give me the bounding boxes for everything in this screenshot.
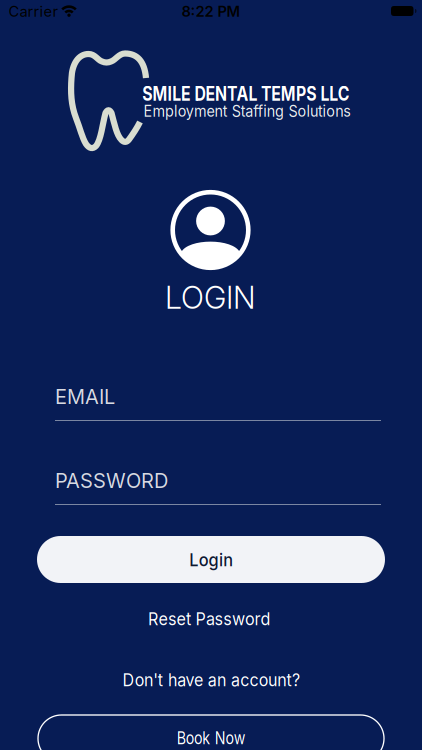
staticText: Carrier [8, 3, 58, 20]
button[interactable]: PASSWORD [55, 469, 381, 505]
staticText: Book Now [169, 728, 252, 748]
staticText: PASSWORD [55, 469, 168, 493]
staticText: 8:22 PM [181, 3, 240, 20]
button[interactable]: Book Now [38, 715, 384, 750]
button[interactable]: Login [37, 536, 385, 583]
button[interactable]: EMAIL [55, 385, 381, 421]
staticText: Don't have an account? [115, 670, 307, 690]
staticText: LOGIN [165, 279, 256, 316]
staticText: Employment Staffing Solutions [132, 102, 362, 120]
staticText: Login [186, 548, 236, 570]
staticText: SMILE DENTAL TEMPS LLC [115, 82, 377, 105]
staticText: EMAIL [55, 385, 115, 409]
staticText: Reset Password [138, 607, 279, 629]
button[interactable]: Reset Password [138, 607, 279, 629]
